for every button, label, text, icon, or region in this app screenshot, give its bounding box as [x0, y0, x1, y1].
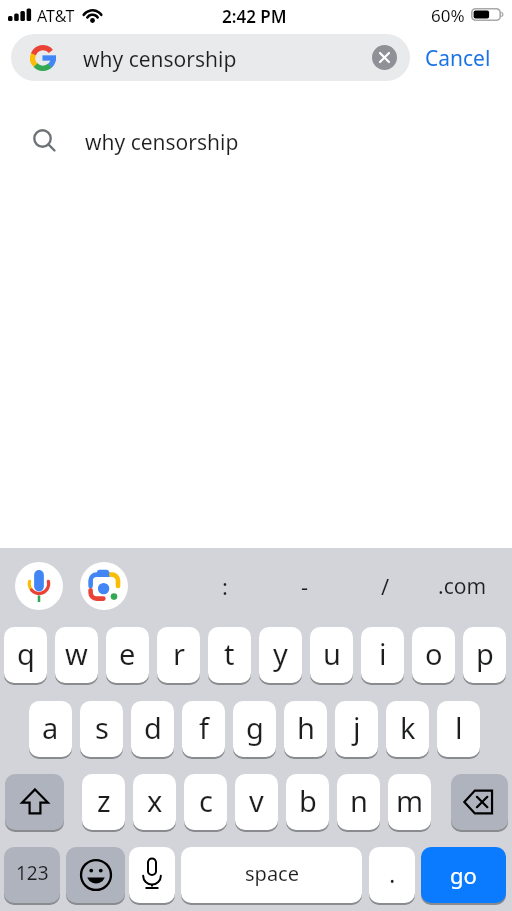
button[interactable]: z: [82, 774, 125, 830]
staticText: p: [476, 634, 494, 673]
button[interactable]: .com: [430, 562, 494, 610]
button[interactable]: 123: [4, 847, 60, 903]
staticText: a: [42, 708, 59, 747]
staticText: 60%: [431, 4, 465, 27]
button[interactable]: why censorship: [11, 34, 410, 81]
staticText: b: [299, 781, 317, 820]
staticText: r: [173, 634, 185, 673]
button[interactable]: x: [133, 774, 176, 830]
button[interactable]: n: [337, 774, 380, 830]
staticText: .: [389, 857, 396, 890]
button[interactable]: g: [233, 701, 276, 757]
staticText: s: [95, 708, 109, 747]
staticText: Cancel: [425, 44, 491, 73]
staticText: :: [222, 571, 228, 601]
button[interactable]: [129, 847, 175, 903]
staticText: f: [199, 708, 209, 747]
staticText: t: [224, 634, 235, 673]
staticText: v: [249, 781, 264, 820]
staticText: z: [97, 781, 111, 820]
button[interactable]: d: [131, 701, 174, 757]
staticText: o: [425, 634, 443, 673]
button[interactable]: t: [208, 627, 251, 683]
staticText: w: [65, 634, 88, 673]
button[interactable]: [15, 562, 63, 610]
button[interactable]: c: [184, 774, 227, 830]
button[interactable]: .: [369, 847, 415, 903]
button[interactable]: e: [106, 627, 149, 683]
button[interactable]: [80, 562, 128, 610]
staticText: x: [147, 781, 163, 820]
staticText: n: [350, 781, 368, 820]
button[interactable]: -: [280, 562, 330, 610]
button[interactable]: [5, 774, 64, 830]
button[interactable]: w: [55, 627, 98, 683]
button[interactable]: Cancel: [420, 40, 496, 76]
button[interactable]: i: [361, 627, 404, 683]
staticText: c: [199, 781, 213, 820]
staticText: l: [455, 708, 463, 747]
staticText: d: [144, 708, 162, 747]
staticText: h: [297, 708, 315, 747]
staticText: /: [381, 571, 390, 601]
button[interactable]: l: [437, 701, 480, 757]
button[interactable]: why censorship: [0, 117, 512, 165]
button[interactable]: s: [80, 701, 123, 757]
button[interactable]: /: [360, 562, 410, 610]
button[interactable]: a: [29, 701, 72, 757]
button[interactable]: y: [259, 627, 302, 683]
staticText: k: [400, 708, 416, 747]
button[interactable]: [451, 774, 508, 830]
staticText: go: [450, 860, 477, 890]
staticText: y: [273, 634, 288, 673]
staticText: m: [396, 781, 424, 820]
button[interactable]: k: [386, 701, 429, 757]
button[interactable]: b: [286, 774, 329, 830]
staticText: g: [246, 708, 264, 747]
button[interactable]: o: [412, 627, 455, 683]
button[interactable]: space: [181, 847, 362, 903]
button[interactable]: h: [284, 701, 327, 757]
staticText: 2:42 PM: [222, 5, 287, 28]
staticText: i: [379, 634, 387, 673]
staticText: -: [301, 571, 309, 601]
staticText: space: [245, 860, 299, 887]
staticText: u: [323, 634, 341, 673]
staticText: j: [353, 708, 361, 747]
button[interactable]: v: [235, 774, 278, 830]
staticText: q: [17, 634, 35, 673]
button[interactable]: u: [310, 627, 353, 683]
button[interactable]: [66, 847, 125, 903]
button[interactable]: q: [4, 627, 47, 683]
staticText: AT&T: [37, 5, 75, 27]
button[interactable]: j: [335, 701, 378, 757]
button[interactable]: r: [157, 627, 200, 683]
button[interactable]: :: [200, 562, 250, 610]
staticText: .com: [438, 572, 487, 601]
staticText: why censorship: [83, 45, 237, 74]
button[interactable]: p: [463, 627, 506, 683]
staticText: e: [119, 634, 136, 673]
button[interactable]: m: [388, 774, 431, 830]
staticText: why censorship: [85, 128, 239, 157]
button[interactable]: [372, 45, 397, 70]
button[interactable]: f: [182, 701, 225, 757]
button[interactable]: go: [421, 847, 506, 903]
staticText: 123: [16, 860, 49, 886]
